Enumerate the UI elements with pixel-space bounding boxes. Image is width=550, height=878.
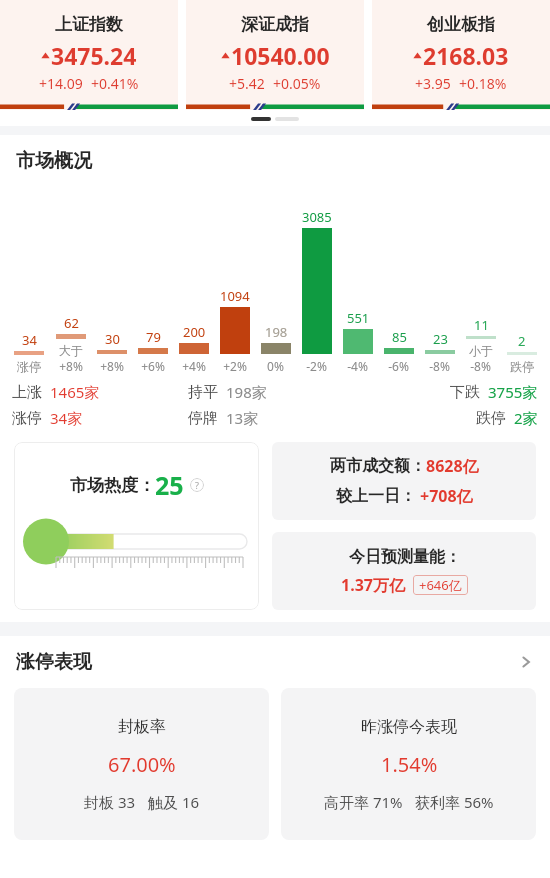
staticText: 上涨 [12,383,42,402]
staticText: 持平 [188,383,218,402]
staticText: 上证指数 [55,14,123,35]
staticText: 高开率 71% [324,792,403,812]
staticText: +0.41% [91,74,139,93]
staticText: 停牌 [188,409,218,428]
staticText: 昨涨停今表现 [361,717,457,737]
staticText: 67.00% [108,751,176,778]
staticText: 跌停 [476,409,506,428]
button[interactable]: 深证成指 [186,0,364,110]
button[interactable]: 昨涨停今表现 [281,688,536,840]
staticText: 0% [267,358,284,374]
staticText: -2% [306,358,327,374]
staticText: 2家 [514,408,538,428]
staticText: +646亿 [419,576,462,594]
staticText: 市场热度： [70,475,155,496]
staticText: 封板率 [118,717,166,737]
staticText: 3085 [302,208,332,226]
staticText: 3475.24 [51,40,137,71]
button[interactable]: 上证指数 [0,0,178,110]
staticText: 200 [183,323,206,341]
staticText: 小于 [469,343,493,358]
staticText: 两市成交额： [330,456,426,476]
staticText: 85 [392,328,407,346]
staticText: 触及 16 [148,792,200,812]
staticText: +4% [182,358,206,374]
staticText: +5.42 [229,74,265,93]
staticText: 30 [105,330,120,348]
staticText: 获利率 56% [415,792,494,812]
staticText: 62 [64,314,79,332]
button[interactable]: 市场热度： [14,442,259,610]
staticText: 封板 33 [84,792,136,812]
staticText: 今日预测量能： [349,547,461,567]
staticText: 大于 [59,343,83,358]
staticText: 较上一日： [336,486,416,506]
staticText: 涨停 [12,409,42,428]
staticText: 13家 [226,408,259,428]
staticText: 涨停 [17,359,41,374]
staticText: +0.18% [459,74,507,93]
staticText: 551 [347,309,370,327]
button[interactable]: 涨停表现 [16,650,534,674]
button[interactable]: 封板率 [14,688,269,840]
staticText: 创业板指 [427,14,495,35]
staticText: 8628亿 [426,455,479,477]
staticText: 深证成指 [241,14,309,35]
staticText: 2 [518,332,526,350]
staticText: ? [195,479,199,491]
staticText: -6% [388,358,409,374]
staticText: 34家 [50,408,83,428]
staticText: 1.54% [381,751,438,778]
staticText: 1465家 [50,382,100,402]
staticText: +8% [59,358,83,374]
staticText: +708亿 [420,485,473,507]
staticText: 10540.00 [231,40,330,71]
staticText: -8% [429,358,450,374]
staticText: -4% [347,358,368,374]
staticText: 11 [474,316,489,334]
staticText: 25 [155,468,184,502]
staticText: 79 [146,328,161,346]
staticText: 23 [433,330,448,348]
button[interactable]: 今日预测量能： [272,532,536,610]
staticText: +3.95 [415,74,451,93]
staticText: +2% [223,358,247,374]
staticText: 198 [265,323,288,341]
staticText: +6% [141,358,165,374]
staticText: 跌停 [510,359,534,374]
staticText: -8% [470,358,491,374]
staticText: 下跌 [450,383,480,402]
staticText: 1.37万亿 [341,574,405,596]
staticText: +14.09 [39,74,83,93]
button[interactable]: 帮助 [190,478,204,492]
staticText: 198家 [226,382,267,402]
staticText: 3755家 [488,382,538,402]
staticText: +8% [100,358,124,374]
staticText: +0.05% [273,74,321,93]
staticText: 涨停表现 [16,650,92,674]
staticText: 34 [22,331,37,349]
staticText: 1094 [220,287,250,305]
other: 查看更多 [518,654,534,670]
button[interactable]: 创业板指 [372,0,550,110]
staticText: 市场概况 [16,149,92,173]
staticText: 2168.03 [423,40,509,71]
button[interactable]: 两市成交额： [272,442,536,520]
